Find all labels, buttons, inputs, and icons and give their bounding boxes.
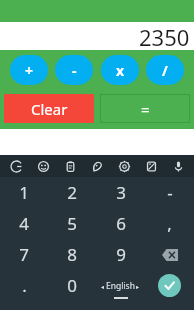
button[interactable]: Voice input	[168, 156, 188, 176]
staticText: /	[162, 61, 168, 80]
button[interactable]: Translate	[141, 156, 161, 176]
staticText: English	[106, 280, 135, 292]
button[interactable]: 1	[0, 177, 48, 208]
staticText: ◂	[101, 283, 105, 290]
button[interactable]: 8	[48, 239, 96, 270]
button[interactable]: -	[55, 55, 93, 85]
staticText: ,	[167, 212, 172, 235]
button[interactable]: ,	[145, 208, 194, 239]
button[interactable]: =	[101, 95, 189, 122]
staticText: .	[22, 274, 27, 297]
button[interactable]: Clipboard	[60, 156, 80, 176]
button[interactable]: 6	[96, 208, 145, 239]
staticText: 4	[19, 212, 29, 235]
button[interactable]: +	[10, 55, 48, 85]
button[interactable]: Gboard	[6, 156, 26, 176]
staticText: x	[116, 61, 125, 80]
button[interactable]: Backspace	[145, 239, 194, 270]
staticText: 2	[67, 181, 77, 204]
button[interactable]: 9	[96, 239, 145, 270]
staticText: 9	[116, 243, 126, 266]
staticText: 3	[116, 181, 126, 204]
button[interactable]: Clear	[4, 94, 94, 123]
staticText: -	[72, 61, 77, 80]
staticText: 0	[67, 274, 77, 297]
staticText: -	[167, 181, 173, 204]
button[interactable]: 7	[0, 239, 48, 270]
staticText: 7	[19, 243, 29, 266]
button[interactable]: Settings	[114, 156, 134, 176]
button[interactable]: 3	[96, 177, 145, 208]
button[interactable]: Stickers	[87, 156, 107, 176]
staticText: ▸	[136, 283, 140, 290]
staticText: =	[141, 99, 150, 119]
staticText: Clear	[31, 99, 68, 119]
staticText: 2350	[139, 22, 190, 50]
staticText: 6	[116, 212, 126, 235]
staticText: +	[25, 61, 34, 80]
button[interactable]: Enter	[158, 274, 181, 297]
staticText: 8	[67, 243, 77, 266]
button[interactable]: 2	[48, 177, 96, 208]
button[interactable]: /	[146, 55, 184, 85]
button[interactable]: 0	[48, 270, 96, 301]
button[interactable]: ◂	[96, 270, 145, 301]
staticText: 5	[67, 212, 77, 235]
button[interactable]: x	[101, 55, 139, 85]
button[interactable]: .	[0, 270, 48, 301]
button[interactable]: 4	[0, 208, 48, 239]
staticText: 1	[19, 181, 29, 204]
button[interactable]: 5	[48, 208, 96, 239]
button[interactable]: Emoji	[33, 156, 53, 176]
button[interactable]: -	[145, 177, 194, 208]
